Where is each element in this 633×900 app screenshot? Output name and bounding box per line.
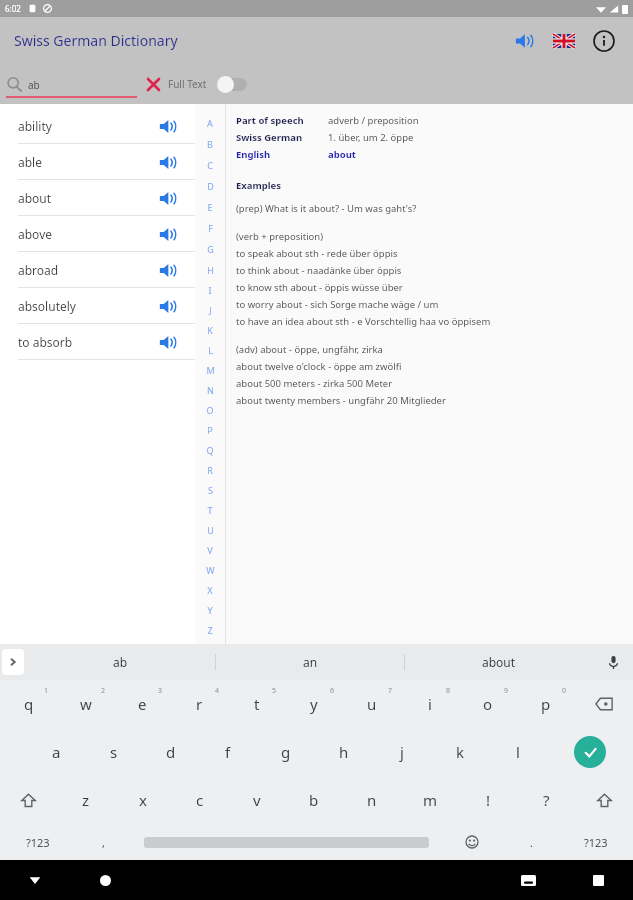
button[interactable]: f — [199, 728, 257, 776]
button[interactable]: W — [195, 560, 225, 580]
button[interactable]: H — [195, 259, 225, 280]
button[interactable]: m — [401, 776, 459, 824]
button[interactable]: Play able — [155, 150, 179, 174]
button[interactable]: N — [195, 380, 225, 400]
button[interactable]: ab — [26, 644, 215, 680]
button[interactable]: Play above — [155, 222, 179, 246]
button[interactable]: English — [236, 148, 328, 161]
button[interactable]: ! — [459, 776, 517, 824]
button[interactable]: about — [405, 644, 593, 680]
button[interactable]: to absorb — [0, 324, 195, 359]
button[interactable]: G — [195, 238, 225, 259]
button[interactable]: n — [343, 776, 401, 824]
button[interactable]: w — [57, 680, 114, 728]
button[interactable]: Play about — [155, 186, 179, 210]
button[interactable]: v — [228, 776, 285, 824]
button[interactable]: L — [195, 340, 225, 360]
button[interactable]: a — [28, 728, 85, 776]
button[interactable]: Y — [195, 600, 225, 620]
button[interactable]: Switch keyboard — [493, 860, 563, 900]
button[interactable]: V — [195, 540, 225, 560]
button[interactable]: U — [195, 520, 225, 540]
button[interactable]: ? — [517, 776, 575, 824]
button[interactable]: about — [0, 180, 195, 215]
button[interactable]: abroad — [0, 252, 195, 287]
staticText: a — [52, 742, 61, 762]
button[interactable]: Expand suggestions — [0, 644, 26, 680]
button[interactable]: d — [142, 728, 199, 776]
button[interactable]: Enter — [547, 728, 633, 776]
button[interactable]: A — [195, 112, 225, 133]
button[interactable]: Z — [195, 620, 225, 640]
button[interactable]: T — [195, 500, 225, 520]
button[interactable]: Home — [70, 860, 140, 900]
button[interactable]: u — [343, 680, 401, 728]
button[interactable]: Play ability — [155, 114, 179, 138]
staticText: Examples — [236, 179, 282, 192]
button[interactable]: e — [114, 680, 171, 728]
button[interactable]: I — [195, 280, 225, 300]
button[interactable]: ?123 — [559, 824, 633, 860]
button[interactable]: Play abroad — [155, 258, 179, 282]
button[interactable]: h — [315, 728, 373, 776]
button[interactable]: an — [216, 644, 404, 680]
button[interactable]: Play absolutely — [155, 294, 179, 318]
button[interactable]: l — [489, 728, 547, 776]
button[interactable]: M — [195, 360, 225, 380]
button[interactable]: Shift — [0, 776, 57, 824]
button[interactable]: about — [328, 148, 356, 161]
button[interactable]: K — [195, 320, 225, 340]
button[interactable]: j — [373, 728, 431, 776]
button[interactable]: D — [195, 175, 225, 196]
button[interactable]: Space — [131, 824, 441, 860]
button[interactable]: o — [459, 680, 517, 728]
button[interactable]: ?123 — [0, 824, 75, 860]
button[interactable]: x — [114, 776, 171, 824]
button[interactable]: y — [285, 680, 343, 728]
button[interactable]: p — [517, 680, 575, 728]
button[interactable]: Voice input — [593, 644, 633, 680]
button[interactable]: , — [75, 824, 131, 860]
button[interactable]: B — [195, 133, 225, 154]
button[interactable]: P — [195, 420, 225, 440]
button[interactable]: Backspace — [575, 680, 633, 728]
button[interactable]: Recents — [563, 860, 633, 900]
button[interactable]: Sound — [507, 24, 541, 58]
button[interactable]: q — [0, 680, 57, 728]
button[interactable]: S — [195, 480, 225, 500]
button[interactable]: s — [85, 728, 142, 776]
button[interactable]: X — [195, 580, 225, 600]
button[interactable]: Shift — [575, 776, 633, 824]
button[interactable]: above — [0, 216, 195, 251]
button[interactable]: O — [195, 400, 225, 420]
button[interactable]: Play to absorb — [155, 330, 179, 354]
button[interactable]: absolutely — [0, 288, 195, 323]
button[interactable]: Full text toggle — [217, 71, 257, 97]
staticText: A — [207, 117, 213, 129]
button[interactable]: . — [503, 824, 559, 860]
button[interactable]: E — [195, 196, 225, 217]
button[interactable]: able — [0, 144, 195, 179]
staticText: 2 — [101, 686, 106, 696]
button[interactable]: z — [57, 776, 114, 824]
button[interactable]: i — [401, 680, 459, 728]
button[interactable]: g — [257, 728, 315, 776]
button[interactable]: J — [195, 300, 225, 320]
button[interactable]: F — [195, 217, 225, 238]
button[interactable]: R — [195, 460, 225, 480]
button[interactable]: ability — [0, 108, 195, 143]
button[interactable]: b — [285, 776, 343, 824]
button[interactable]: r — [171, 680, 228, 728]
button[interactable]: Info — [587, 24, 621, 58]
staticText: Full Text — [168, 77, 207, 91]
button[interactable]: t — [228, 680, 285, 728]
button[interactable]: C — [195, 154, 225, 175]
button[interactable]: Q — [195, 440, 225, 460]
button[interactable]: c — [171, 776, 228, 824]
button[interactable]: k — [431, 728, 489, 776]
button[interactable]: Clear search — [140, 71, 166, 97]
button[interactable]: Emoji — [441, 824, 503, 860]
button[interactable]: Language — [547, 24, 581, 58]
button[interactable]: Back — [0, 860, 70, 900]
staticText: e — [138, 694, 147, 714]
